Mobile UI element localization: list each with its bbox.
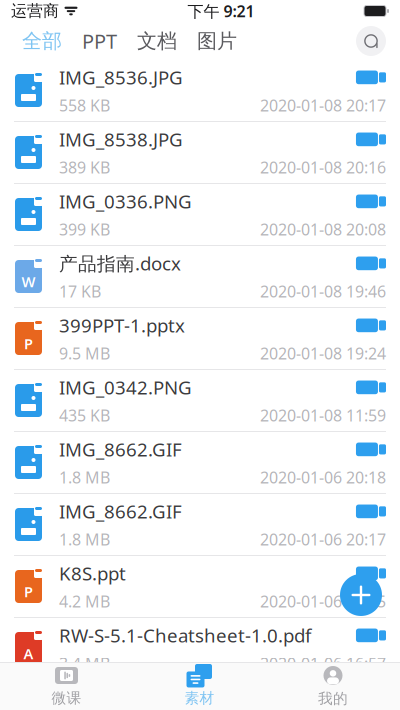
button[interactable]: W (0, 246, 400, 308)
staticText: 2020-01-06 20:18 (260, 467, 386, 488)
staticText: 2020-01-08 19:46 (260, 281, 386, 302)
staticText: 2020-01-08 19:24 (260, 343, 386, 364)
staticText: IMG_8536.JPG (59, 65, 183, 90)
button[interactable]: Add (338, 572, 384, 618)
staticText: 435 KB (59, 405, 110, 426)
staticText: 1.8 MB (59, 467, 110, 488)
staticText: 产品指南.docx (59, 251, 181, 276)
button[interactable]: 文档 (127, 22, 187, 60)
staticText: 399PPT-1.pptx (59, 313, 185, 338)
staticText: 2020-01-08 20:17 (260, 95, 386, 116)
staticText: IMG_0336.PNG (59, 189, 192, 214)
staticText: 558 KB (59, 95, 110, 116)
staticText: 389 KB (59, 157, 110, 178)
staticText: 2020-01-08 20:16 (260, 157, 386, 178)
button[interactable]: 微课 (0, 663, 133, 709)
staticText: IMG_8538.JPG (59, 127, 183, 152)
staticText: 3.4 MB (59, 653, 110, 674)
staticText: PPT (82, 28, 117, 54)
staticText: 2020-01-06 16:57 (260, 653, 386, 674)
staticText: 图片 (197, 29, 237, 53)
button[interactable]: IMG_8538.JPG (0, 122, 400, 184)
staticText: 2020-01-06 19:55 (260, 591, 386, 612)
staticText: 399 KB (59, 219, 110, 240)
staticText: 17 KB (59, 281, 101, 302)
button[interactable]: 素材 (133, 663, 266, 709)
staticText: K8S.ppt (59, 561, 126, 586)
button[interactable]: 全部 (12, 22, 72, 60)
staticText: 素材 (184, 689, 214, 707)
staticText: RW-S-5.1-Cheatsheet-1.0.pdf (59, 623, 311, 648)
staticText: 4.2 MB (59, 591, 110, 612)
staticText: A (23, 644, 33, 663)
staticText: 文档 (137, 29, 177, 53)
button[interactable]: 我的 (266, 663, 400, 709)
button[interactable]: P (0, 308, 400, 370)
button[interactable]: PPT (72, 22, 127, 60)
button[interactable]: A (0, 618, 400, 680)
staticText: 运营商 (11, 1, 59, 21)
staticText: P (24, 582, 33, 601)
button[interactable]: IMG_8662.GIF (0, 494, 400, 556)
staticText: IMG_8662.GIF (59, 437, 182, 462)
staticText: 全部 (22, 29, 62, 53)
button[interactable]: 图片 (187, 22, 247, 60)
button[interactable]: IMG_8662.GIF (0, 432, 400, 494)
staticText: P (24, 334, 33, 353)
staticText: 2020-01-06 20:17 (260, 529, 386, 550)
staticText: 9.5 MB (59, 343, 110, 364)
button[interactable]: IMG_8536.JPG (0, 60, 400, 122)
button[interactable]: IMG_0342.PNG (0, 370, 400, 432)
button[interactable]: IMG_0336.PNG (0, 184, 400, 246)
staticText: 微课 (51, 689, 81, 707)
staticText: 我的 (318, 689, 348, 707)
button[interactable]: Search (354, 24, 388, 58)
button[interactable]: P (0, 556, 400, 618)
staticText: 2020-01-08 20:08 (260, 219, 386, 240)
staticText: W (21, 272, 35, 291)
staticText: 1.8 MB (59, 529, 110, 550)
staticText: IMG_0342.PNG (59, 375, 192, 400)
staticText: 下午 9:21 (187, 0, 254, 22)
staticText: 2020-01-08 11:59 (260, 405, 386, 426)
staticText: IMG_8662.GIF (59, 499, 182, 524)
